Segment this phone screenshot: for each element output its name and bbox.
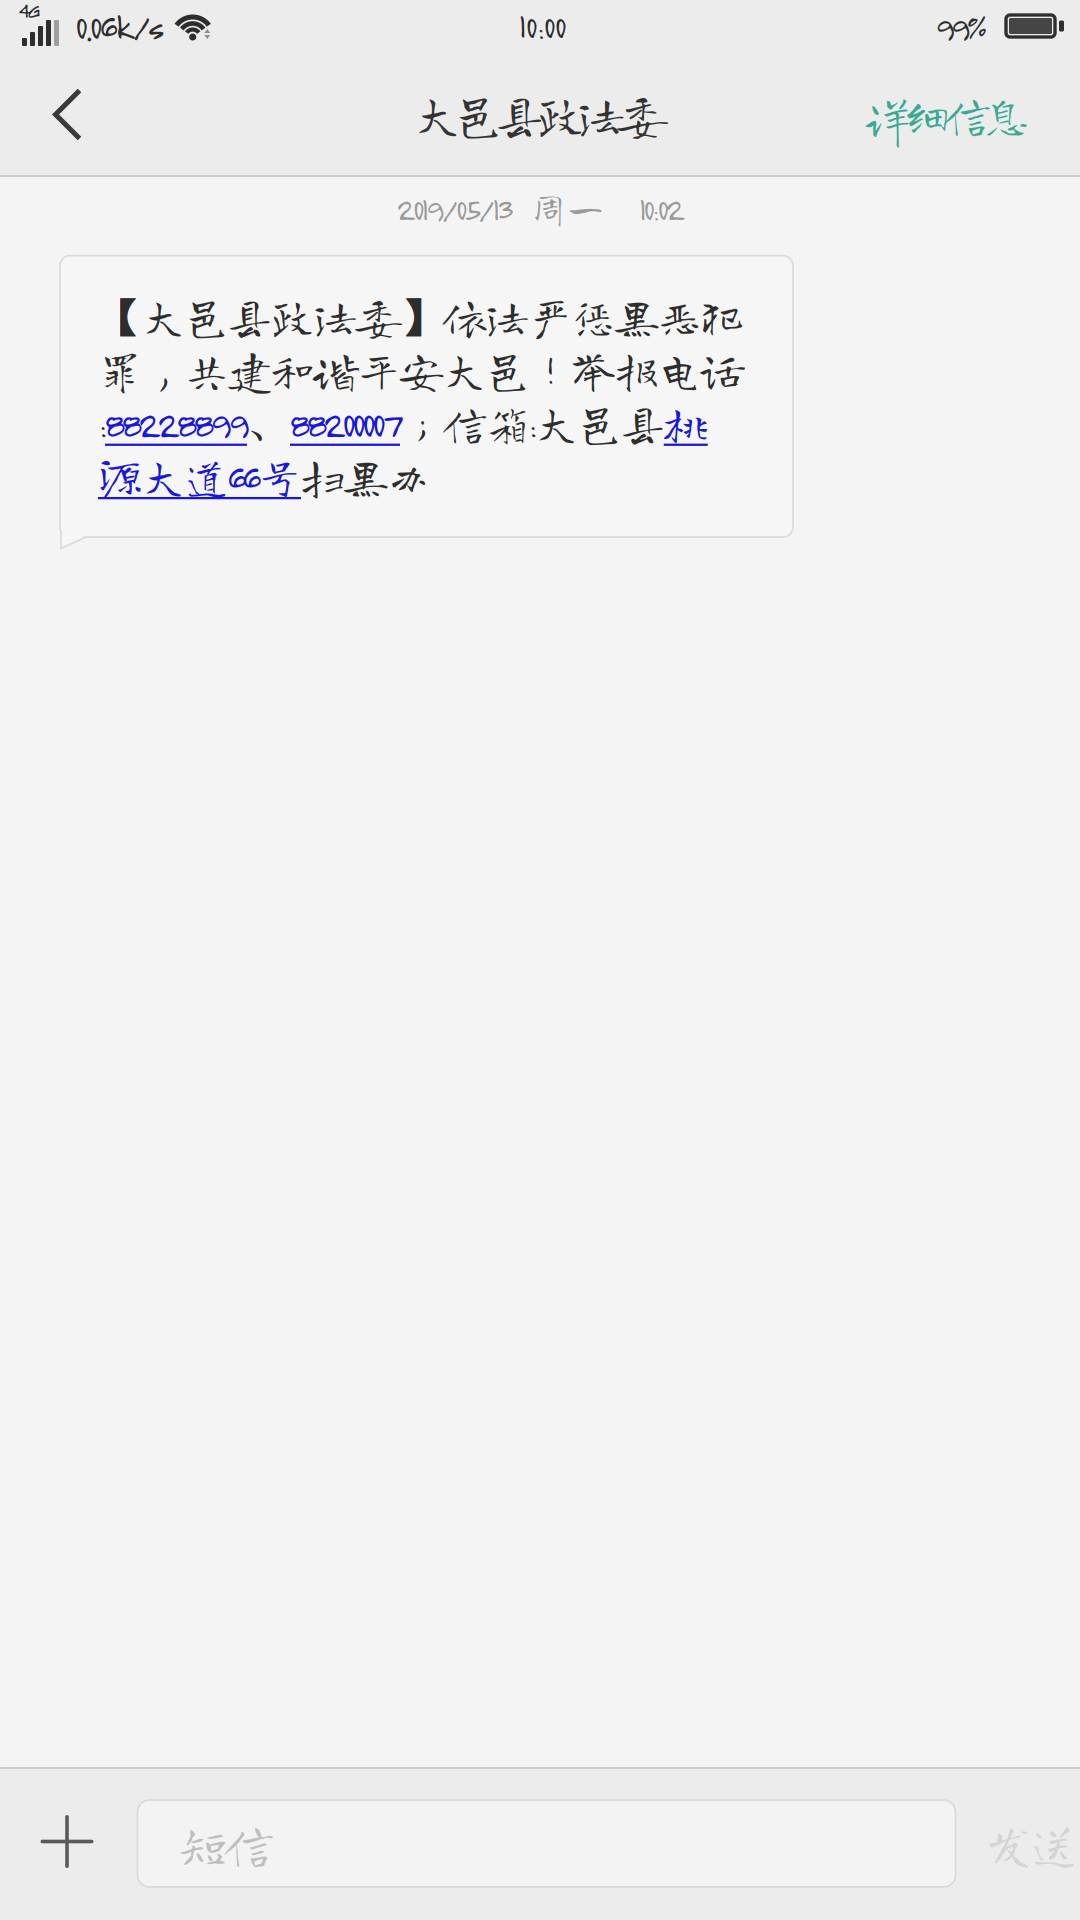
staticText: 10:00 (519, 6, 566, 46)
staticText: 99% (935, 5, 986, 47)
staticText: 4G (18, 0, 40, 23)
staticText: 详细信息 (863, 90, 1031, 138)
staticText: 大邑县政法委 (413, 90, 667, 139)
button[interactable]: Attach (0, 1777, 137, 1910)
staticText: 发送 (983, 1818, 1079, 1869)
button[interactable]: 详细信息 (843, 62, 1051, 166)
staticText: 0.06k/s (75, 5, 163, 47)
button[interactable]: 短信 (137, 1800, 955, 1887)
button[interactable]: Back (0, 60, 112, 169)
button[interactable]: 发送 (955, 1778, 1080, 1909)
staticText: 短信 (177, 1818, 274, 1869)
staticText: 【大邑县政法委】依法严惩黑恶犯 罪，共建和谐平安大邑！举报电话 :8822889… (98, 294, 745, 499)
button[interactable]: 【大邑县政法委】依法严惩黑恶犯 罪，共建和谐平安大邑！举报电话 :8822889… (60, 256, 793, 549)
staticText: 2019/05/13 周一 10:02 (396, 189, 684, 228)
